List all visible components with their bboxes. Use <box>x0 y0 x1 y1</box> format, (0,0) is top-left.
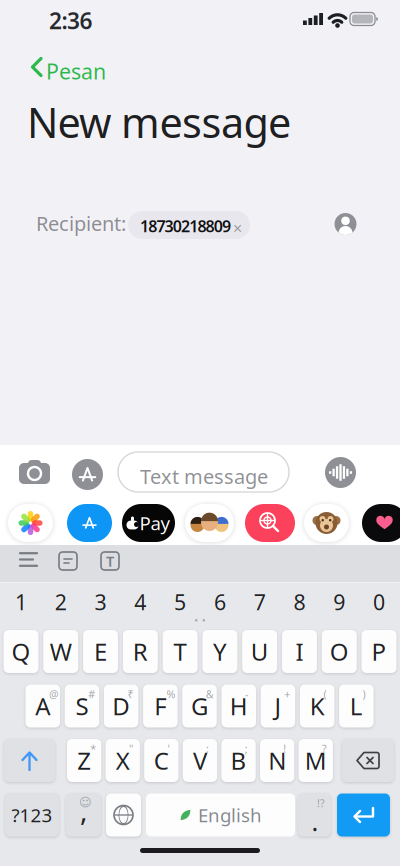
staticText: ☺ <box>79 795 92 809</box>
button[interactable]: E <box>83 630 118 673</box>
button[interactable]: P <box>361 630 396 673</box>
button[interactable]: 2 <box>43 582 78 622</box>
staticText: : <box>206 741 209 756</box>
staticText: 8 <box>293 588 305 616</box>
button[interactable]: G <box>182 684 217 727</box>
staticText: X <box>116 745 130 776</box>
staticText: 0 <box>373 588 385 616</box>
button[interactable]: Y <box>202 630 237 673</box>
button[interactable]: Search images <box>245 504 295 542</box>
staticText: @ <box>49 687 59 701</box>
button[interactable]: ?123 <box>5 793 59 836</box>
staticText: D <box>112 690 130 722</box>
button[interactable]: C <box>144 739 178 782</box>
button[interactable]: Delete <box>342 739 394 782</box>
button[interactable]: 4 <box>123 582 158 622</box>
button[interactable]: Comma <box>66 793 101 836</box>
staticText: - <box>245 687 248 701</box>
staticText: Z <box>77 745 91 776</box>
button[interactable]: App Store <box>67 504 112 542</box>
button[interactable]: Clipboard <box>59 552 77 570</box>
button[interactable]: Memoji Stickers <box>185 504 234 542</box>
staticText: T <box>174 636 187 667</box>
button[interactable]: Voice message <box>325 457 356 488</box>
button[interactable]: 5 <box>163 582 198 622</box>
button[interactable]: Animoji <box>304 504 349 542</box>
button[interactable]: N <box>260 739 294 782</box>
button[interactable]: M <box>299 739 333 782</box>
staticText: K <box>310 690 325 722</box>
staticText: % <box>167 687 176 701</box>
button[interactable]: 6 <box>202 582 237 622</box>
button[interactable]: H <box>221 684 256 727</box>
staticText: Q <box>11 636 30 667</box>
staticText: Pay <box>139 511 170 535</box>
button[interactable]: 7 <box>242 582 277 622</box>
button[interactable]: 0 <box>361 582 396 622</box>
button[interactable]: R <box>123 630 158 673</box>
button[interactable]: L <box>339 684 374 727</box>
button[interactable]: 9 <box>322 582 357 622</box>
button[interactable]: 1 <box>3 582 38 622</box>
button[interactable]: T <box>163 630 198 673</box>
button[interactable]: Q <box>3 630 38 673</box>
staticText: P <box>371 636 386 667</box>
staticText: Pesan <box>46 57 106 85</box>
button[interactable]: Menu <box>19 552 38 567</box>
button[interactable]: Camera <box>19 460 50 484</box>
button[interactable]: Back <box>0 0 110 90</box>
button[interactable]: 3 <box>83 582 118 622</box>
button[interactable]: V <box>183 739 217 782</box>
button[interactable]: Apple Pay <box>122 504 175 542</box>
button[interactable]: B <box>221 739 256 782</box>
staticText: C <box>154 745 169 776</box>
button[interactable]: J <box>261 684 295 727</box>
staticText: ?123 <box>11 803 52 827</box>
staticText: 1 <box>15 588 27 616</box>
button[interactable]: 8 <box>282 582 317 622</box>
button[interactable]: Space <box>146 793 295 836</box>
staticText: A <box>35 690 50 722</box>
staticText: New message <box>27 94 291 149</box>
staticText: ' <box>167 741 169 756</box>
button[interactable]: O <box>322 630 357 673</box>
button[interactable]: Shift <box>4 739 55 782</box>
staticText: . <box>311 804 318 838</box>
button[interactable]: Photos <box>8 504 53 542</box>
staticText: # <box>88 687 95 701</box>
button[interactable]: Next language <box>106 793 141 836</box>
staticText: 9 <box>333 588 345 616</box>
staticText: I <box>295 636 303 667</box>
button[interactable]: U <box>242 630 277 673</box>
button[interactable]: Text message <box>118 452 289 492</box>
staticText: F <box>154 690 166 722</box>
button[interactable]: A <box>25 684 60 727</box>
staticText: !? <box>317 796 325 810</box>
button[interactable]: Add contact <box>334 213 356 235</box>
button[interactable]: Digital Touch <box>362 504 400 542</box>
staticText: 2 <box>55 588 67 616</box>
button[interactable]: K <box>300 684 334 727</box>
button[interactable]: Z <box>67 739 101 782</box>
staticText: ? <box>322 741 327 756</box>
button[interactable]: I <box>282 630 317 673</box>
staticText: " <box>129 741 133 756</box>
staticText: ; <box>245 741 248 756</box>
staticText: ₹ <box>127 687 133 701</box>
button[interactable]: S <box>65 684 99 727</box>
staticText: & <box>206 687 214 701</box>
button[interactable]: Apps <box>72 459 103 490</box>
button[interactable]: D <box>104 684 138 727</box>
staticText: 5 <box>174 588 186 616</box>
staticText: ) <box>363 687 366 701</box>
staticText: E <box>94 636 107 667</box>
button[interactable]: Return <box>337 793 390 836</box>
staticText: R <box>133 636 148 667</box>
button[interactable]: X <box>106 739 140 782</box>
button[interactable]: W <box>43 630 78 673</box>
staticText: 6 <box>214 588 226 616</box>
button[interactable]: Remove recipient <box>128 211 250 239</box>
button[interactable]: F <box>143 684 178 727</box>
button[interactable]: Text editing <box>101 552 119 570</box>
button[interactable]: Period <box>298 793 331 836</box>
